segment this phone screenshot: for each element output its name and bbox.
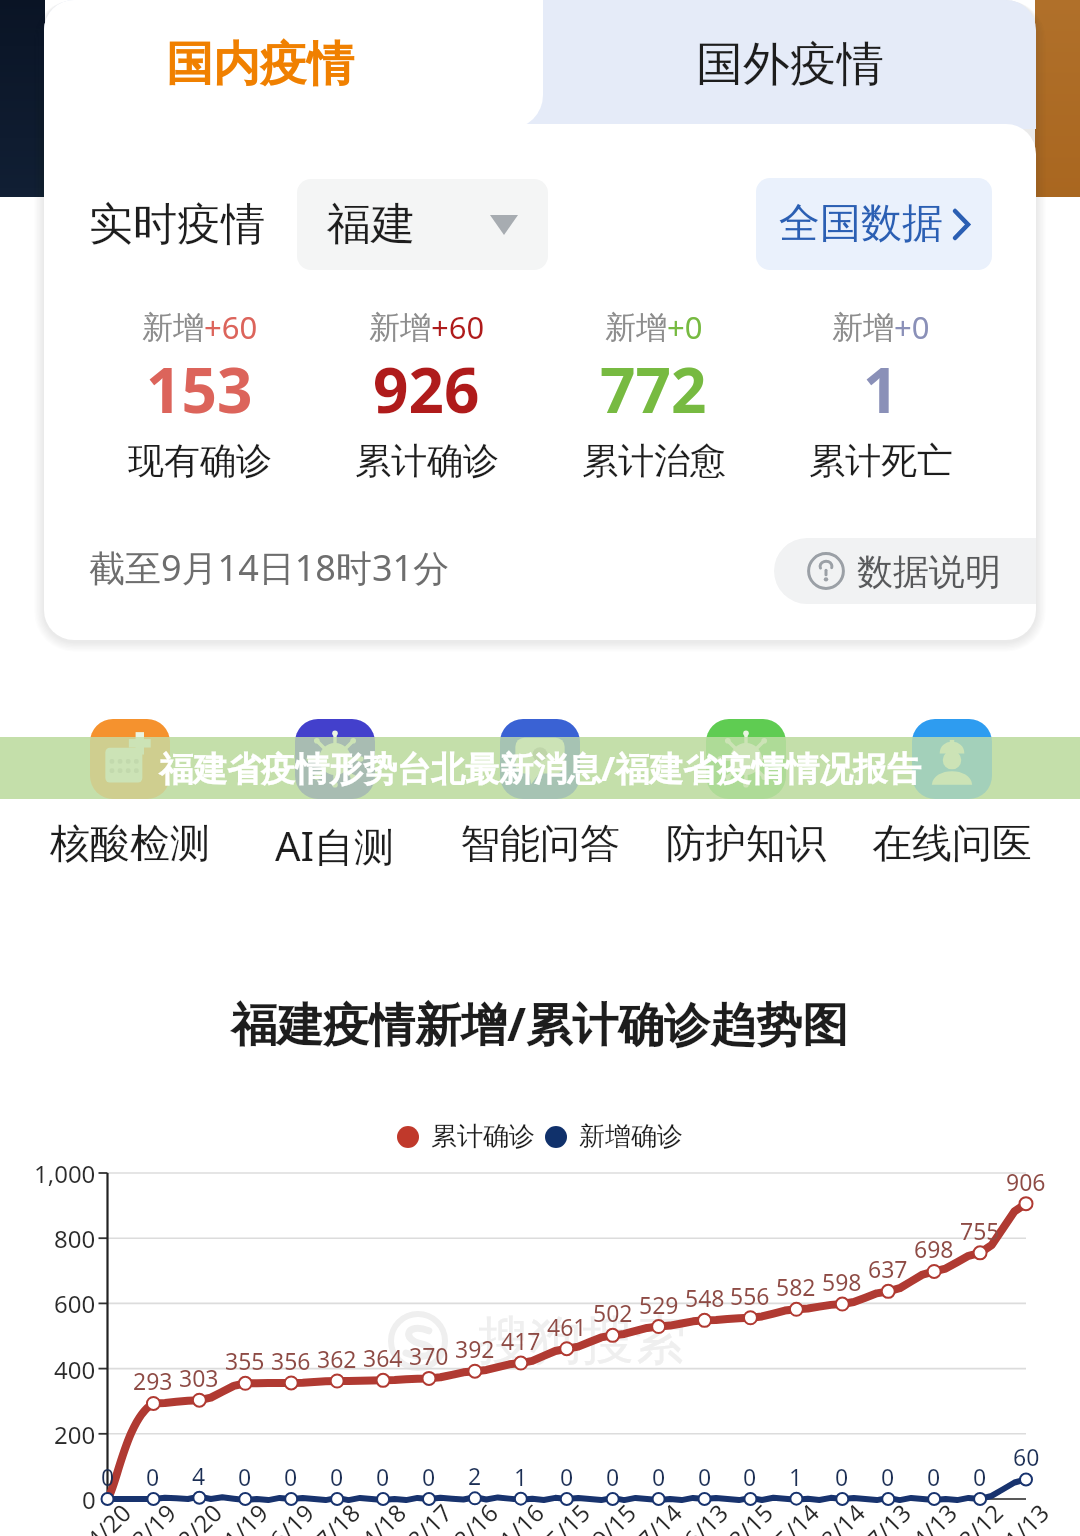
staticText: 7/18 <box>308 1496 367 1536</box>
staticText: 国内疫情 <box>166 35 354 94</box>
staticText: 在线问医 <box>872 818 1032 868</box>
staticText: 2 <box>468 1460 482 1491</box>
staticText: 2/16 <box>446 1496 505 1536</box>
staticText: 417 <box>501 1325 541 1356</box>
staticText: 392 <box>455 1333 495 1364</box>
staticText: 累计治愈 <box>582 438 726 483</box>
staticText: 3/12 <box>951 1496 1010 1536</box>
staticText: 1/19 <box>216 1496 275 1536</box>
staticText: 数据说明 <box>857 549 1001 594</box>
staticText: 4/20 <box>79 1496 138 1536</box>
staticText: 5/14 <box>767 1496 826 1536</box>
staticText: 累计确诊 <box>355 438 499 483</box>
staticText: 1 <box>514 1461 528 1492</box>
staticText: 核酸检测 <box>50 818 210 868</box>
staticText: 153 <box>146 347 253 431</box>
staticText: 国外疫情 <box>696 35 884 94</box>
staticText: 新增 <box>832 308 894 347</box>
staticText: 累计确诊 <box>431 1120 535 1153</box>
staticText: 698 <box>914 1233 954 1264</box>
staticText: 356 <box>271 1345 311 1376</box>
staticText: 637 <box>868 1253 908 1284</box>
staticText: 截至9月14日18时31分 <box>89 543 450 592</box>
staticText: 370 <box>409 1340 449 1371</box>
staticText: 1 <box>863 347 899 431</box>
button[interactable]: 数据说明 <box>774 538 1036 604</box>
staticText: 0 <box>698 1461 712 1492</box>
staticText: 福建省疫情形势台北最新消息/福建省疫情情况报告 <box>159 745 922 791</box>
staticText: 1/13 <box>997 1496 1056 1536</box>
staticText: 0 <box>652 1461 666 1492</box>
staticText: 582 <box>776 1271 816 1302</box>
staticText: 累计死亡 <box>809 438 953 483</box>
staticText: 4 <box>192 1460 206 1491</box>
staticText: +0 <box>894 306 930 348</box>
staticText: 906 <box>1006 1166 1046 1197</box>
staticText: 303 <box>179 1362 219 1393</box>
staticText: 200 <box>54 1418 96 1451</box>
staticText: 0 <box>835 1461 849 1492</box>
staticText: 新增 <box>142 308 204 347</box>
staticText: 全国数据 <box>779 198 943 250</box>
staticText: 926 <box>373 347 480 431</box>
staticText: 800 <box>54 1222 96 1255</box>
staticText: 293 <box>133 1365 173 1396</box>
staticText: 0 <box>743 1461 757 1492</box>
staticText: 355 <box>225 1345 265 1376</box>
staticText: 新增 <box>369 308 431 347</box>
staticText: 548 <box>685 1282 725 1313</box>
staticText: 529 <box>639 1289 679 1320</box>
staticText: 实时疫情 <box>89 197 265 252</box>
staticText: 400 <box>54 1353 96 1386</box>
button[interactable]: 智能问答 <box>437 719 643 868</box>
staticText: 0 <box>101 1461 115 1492</box>
staticText: 600 <box>54 1287 96 1320</box>
staticText: 5/15 <box>538 1496 597 1536</box>
staticText: 防护知识 <box>666 818 826 868</box>
staticText: 0 <box>973 1461 987 1492</box>
staticText: 0 <box>82 1483 96 1516</box>
staticText: 新增确诊 <box>579 1120 683 1153</box>
staticText: 新增 <box>605 308 667 347</box>
staticText: 1,000 <box>34 1157 96 1190</box>
staticText: 598 <box>822 1266 862 1297</box>
staticText: 福建 <box>327 197 415 252</box>
staticText: 0 <box>422 1461 436 1492</box>
staticText: 2/20 <box>170 1496 229 1536</box>
button[interactable]: 在线问医 <box>849 719 1055 868</box>
button[interactable]: 防护知识 <box>643 719 849 868</box>
button[interactable]: 核酸检测 <box>27 719 232 868</box>
staticText: 556 <box>730 1280 770 1311</box>
button[interactable]: 全国数据 <box>756 178 992 270</box>
staticText: 福建疫情新增/累计确诊趋势图 <box>231 992 849 1055</box>
staticText: 搜狗搜索 <box>478 1308 686 1374</box>
button[interactable]: AI自测 <box>232 719 437 873</box>
staticText: +0 <box>667 306 703 348</box>
button[interactable]: 国外疫情 <box>543 0 1036 129</box>
staticText: 461 <box>547 1311 587 1342</box>
staticText: 9/15 <box>584 1496 643 1536</box>
staticText: 502 <box>593 1297 633 1328</box>
staticText: +60 <box>204 306 258 348</box>
staticText: 3/17 <box>400 1496 459 1536</box>
staticText: 智能问答 <box>460 818 620 868</box>
staticText: 60 <box>1013 1441 1040 1472</box>
staticText: 1/16 <box>492 1496 551 1536</box>
button[interactable]: 福建 <box>297 179 548 270</box>
staticText: 4/13 <box>905 1496 964 1536</box>
staticText: 0 <box>284 1461 298 1492</box>
staticText: 1 <box>789 1461 803 1492</box>
staticText: 3/15 <box>721 1496 780 1536</box>
staticText: 362 <box>317 1343 357 1374</box>
staticText: 364 <box>363 1342 403 1373</box>
staticText: 现有确诊 <box>128 438 272 483</box>
staticText: 3/19 <box>124 1496 183 1536</box>
button[interactable]: 国内疫情 <box>44 0 543 129</box>
staticText: 0 <box>376 1461 390 1492</box>
staticText: 7/14 <box>630 1496 689 1536</box>
staticText: 755 <box>960 1215 1000 1246</box>
staticText: 4/18 <box>354 1496 413 1536</box>
staticText: 772 <box>600 347 707 431</box>
staticText: 0 <box>330 1461 344 1492</box>
staticText: 0 <box>881 1461 895 1492</box>
